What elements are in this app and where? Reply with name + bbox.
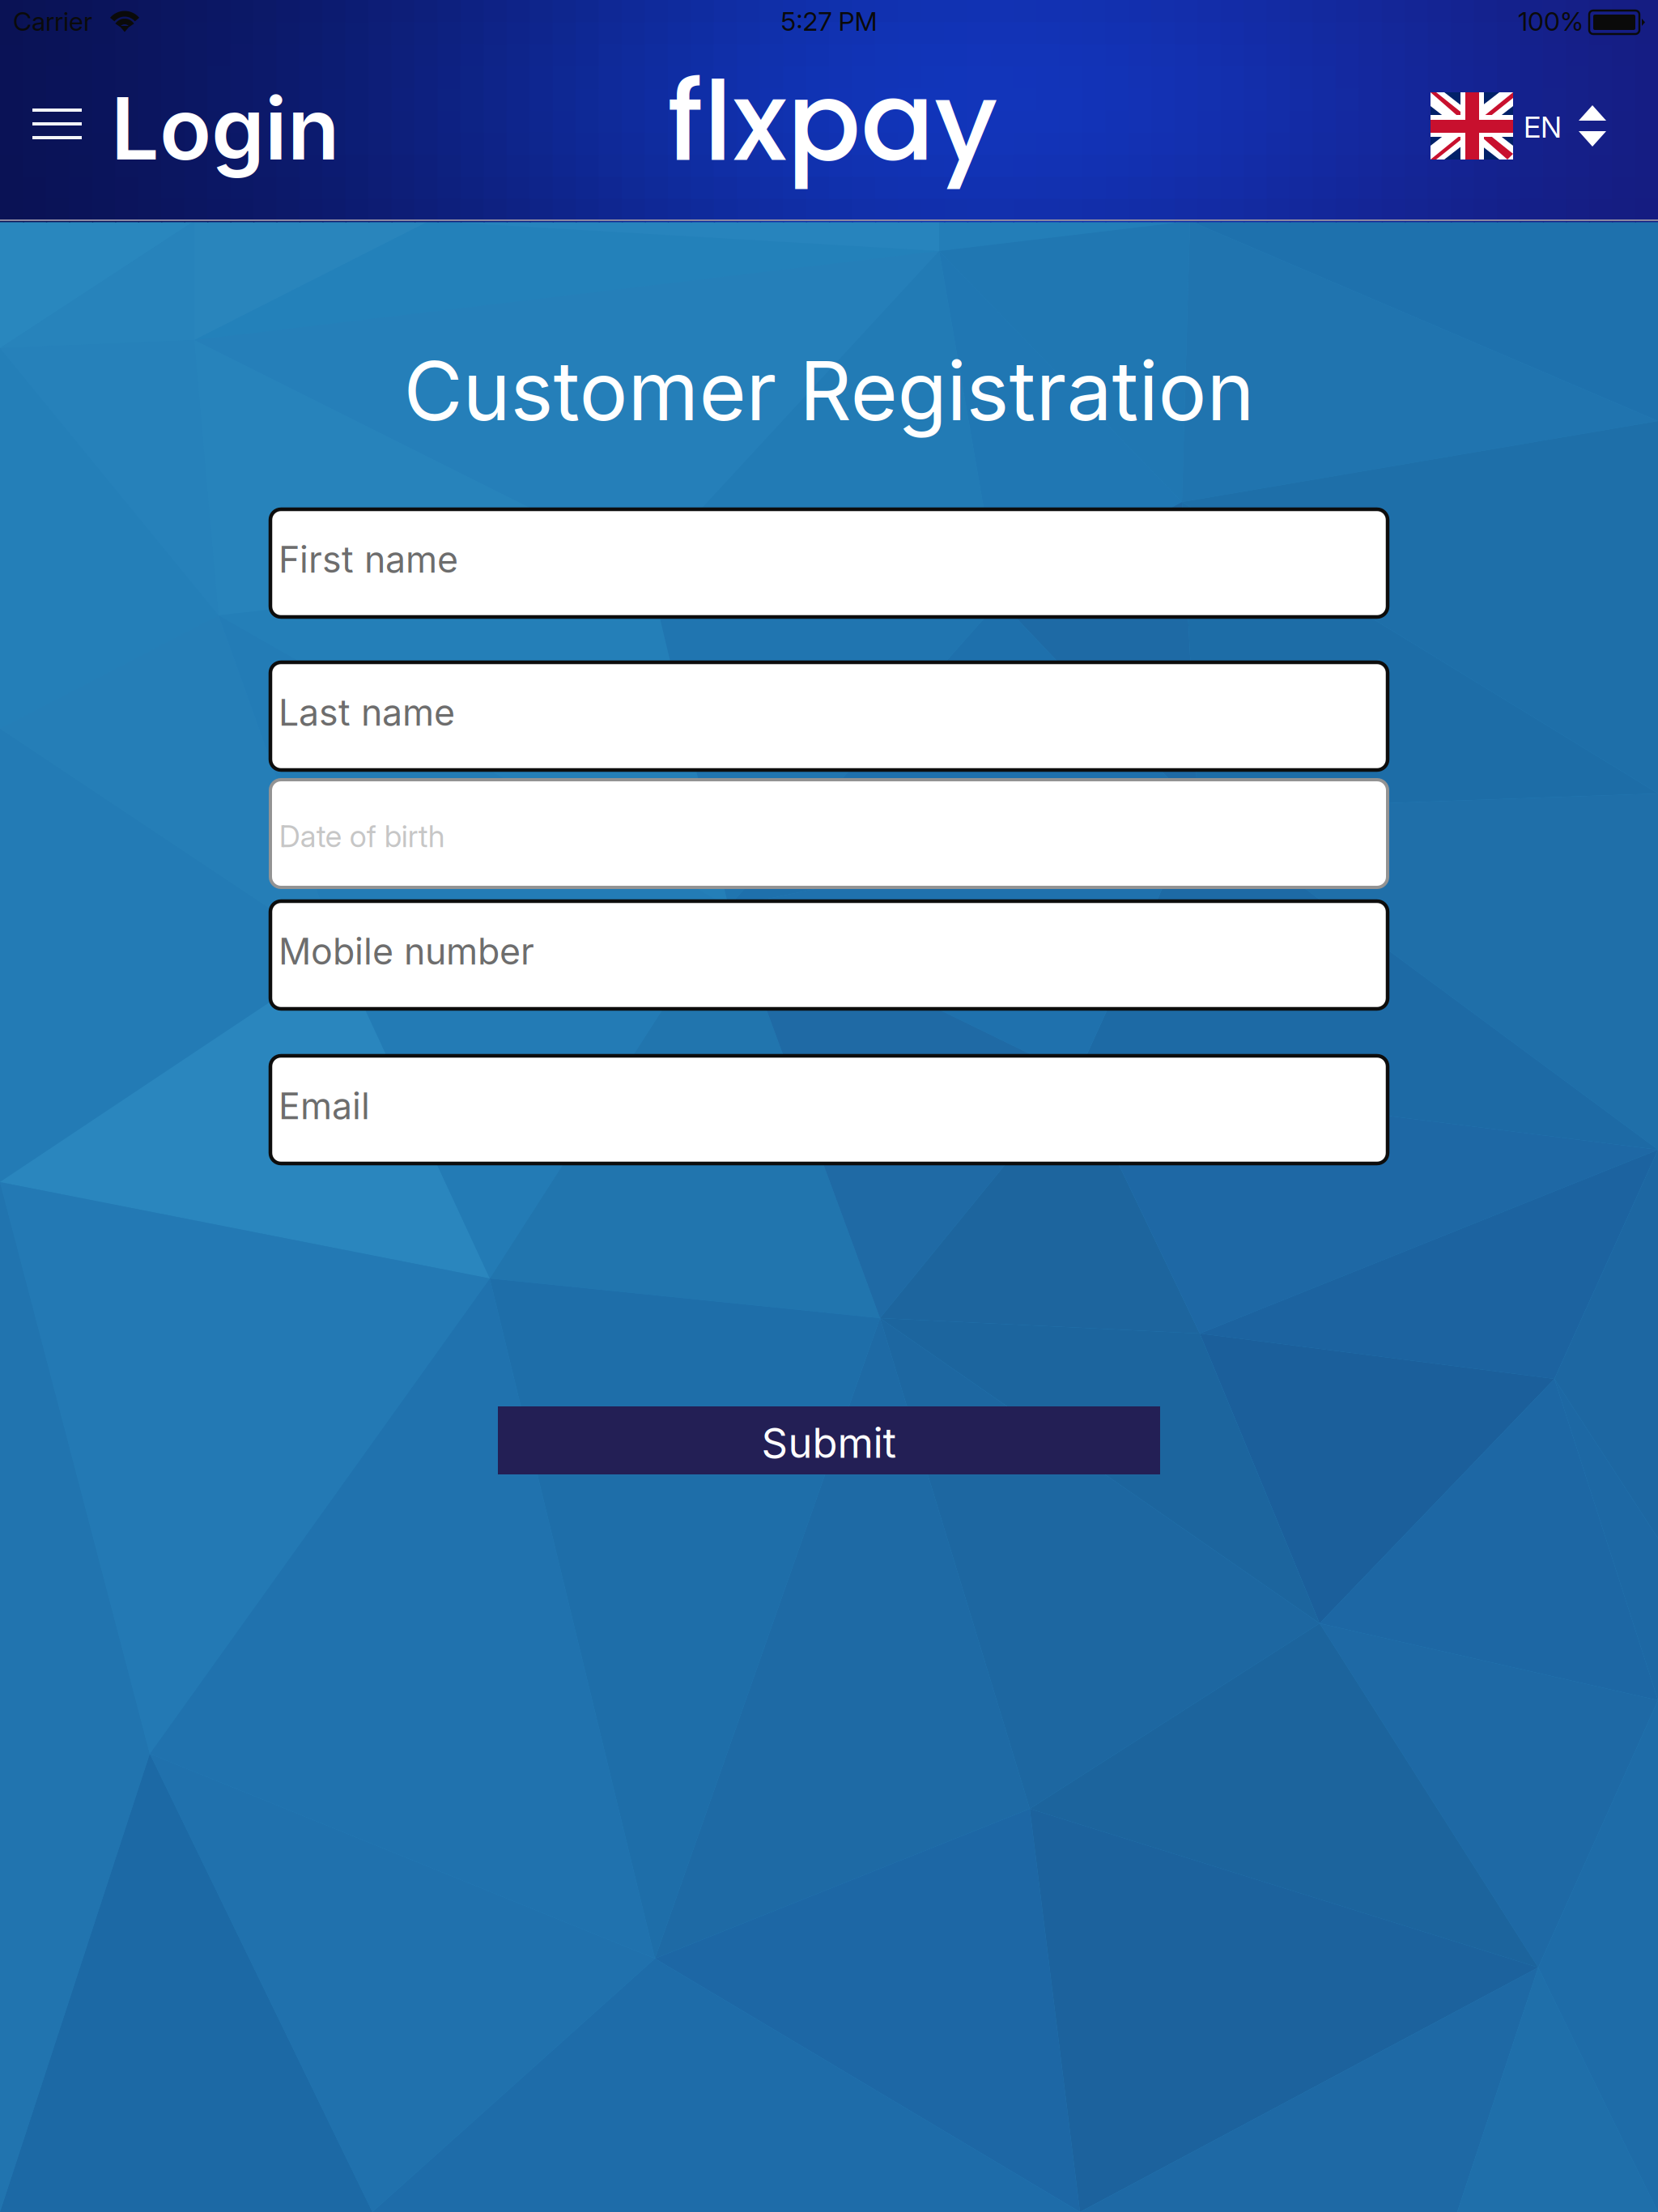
button[interactable]: Menu xyxy=(0,63,97,160)
button[interactable]: Email xyxy=(270,1056,1388,1163)
staticText: 5:27 PM xyxy=(781,6,877,37)
staticText: Carrier xyxy=(13,6,92,37)
button[interactable]: First name xyxy=(270,509,1388,617)
staticText: flxpay xyxy=(667,45,997,198)
button[interactable]: Mobile number xyxy=(270,901,1388,1009)
button[interactable]: Date of birth xyxy=(270,780,1388,887)
button[interactable]: Language: English xyxy=(1417,67,1611,164)
staticText: Mobile number xyxy=(278,929,534,973)
staticText: Login xyxy=(111,77,339,180)
staticText: 100% xyxy=(1518,6,1584,37)
staticText: Email xyxy=(278,1084,370,1128)
button[interactable]: Submit xyxy=(498,1406,1160,1474)
staticText: Customer Registration xyxy=(404,342,1254,440)
button[interactable]: Last name xyxy=(270,662,1388,770)
staticText: Submit xyxy=(761,1418,897,1468)
staticText: EN xyxy=(1524,109,1562,145)
staticText: First name xyxy=(278,538,458,581)
staticText: Last name xyxy=(278,691,455,734)
staticText: Date of birth xyxy=(279,818,445,854)
